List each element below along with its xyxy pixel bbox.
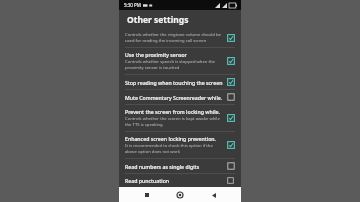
staticText: Use the proximity sensor <box>125 51 187 58</box>
button[interactable]: Checked <box>227 78 235 86</box>
button[interactable]: Checked <box>227 141 235 149</box>
button[interactable]: Recent apps <box>141 189 153 201</box>
staticText: 5:30 PM <box>124 2 141 8</box>
button[interactable]: Controls whether the ringtone volume sho… <box>119 29 241 47</box>
button[interactable]: Stop reading when touching the screen <box>119 75 241 89</box>
staticText: Prevent the screen from locking while. <box>125 108 220 115</box>
staticText: Controls whether speech is stopped when … <box>125 59 223 71</box>
button[interactable]: Checked <box>227 57 235 65</box>
staticText: Controls whether the ringtone volume sho… <box>125 32 223 44</box>
button[interactable]: Checked <box>227 34 235 42</box>
staticText: Read punctuation <box>125 177 170 184</box>
button[interactable]: Enhanced screen locking prevention. <box>119 132 241 158</box>
staticText: Read numbers as single digits <box>125 163 200 170</box>
staticText: Mute Commentary Screenreader while. <box>125 94 223 101</box>
staticText: Other settings <box>127 14 189 26</box>
staticText: Enhanced screen locking prevention. <box>125 135 217 142</box>
button[interactable]: Prevent the screen from locking while. <box>119 105 241 131</box>
button[interactable]: Use the proximity sensor <box>119 48 241 74</box>
button[interactable]: Mute Commentary Screenreader while. <box>119 90 241 104</box>
button[interactable]: Unchecked <box>227 177 235 184</box>
button[interactable]: Read punctuation <box>119 174 241 187</box>
button[interactable]: Back <box>208 189 220 201</box>
staticText: Controls whether the screen is kept awak… <box>125 116 223 128</box>
staticText: Stop reading when touching the screen <box>125 79 223 86</box>
button[interactable]: Unchecked <box>227 162 235 170</box>
button[interactable]: Home <box>174 189 186 201</box>
button[interactable]: Unchecked <box>227 93 235 101</box>
staticText: It is recommended to check this option i… <box>125 143 223 155</box>
button[interactable]: Checked <box>227 114 235 122</box>
button[interactable]: Read numbers as single digits <box>119 159 241 173</box>
